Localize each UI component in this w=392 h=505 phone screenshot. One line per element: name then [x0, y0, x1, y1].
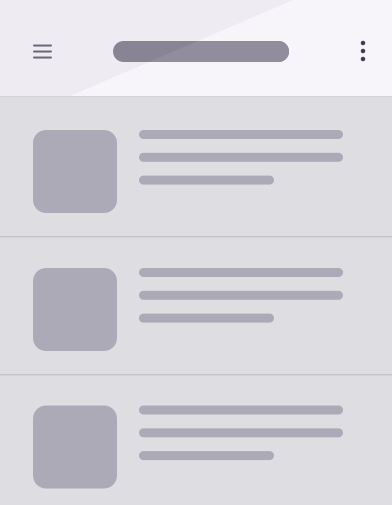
button[interactable]: Menu — [18, 27, 66, 75]
button[interactable]: Search — [113, 41, 289, 62]
button[interactable] — [0, 237, 392, 374]
button[interactable] — [0, 97, 392, 236]
button[interactable] — [0, 375, 392, 505]
button[interactable]: More options — [341, 27, 385, 75]
